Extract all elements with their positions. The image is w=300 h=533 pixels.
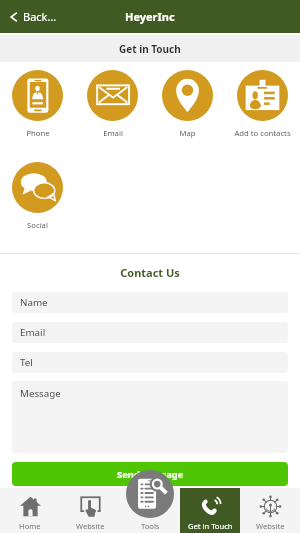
- button[interactable]: Website: [240, 488, 300, 533]
- button[interactable]: Tools: [126, 470, 174, 518]
- staticText: Message: [20, 387, 61, 400]
- staticText: Tools: [141, 521, 160, 531]
- staticText: Email: [20, 326, 46, 339]
- staticText: Contact Us: [0, 265, 300, 280]
- staticText: Name: [20, 296, 48, 309]
- button[interactable]: Send Message: [12, 462, 288, 486]
- staticText: Email: [103, 128, 123, 138]
- button[interactable]: Social: [0, 162, 75, 230]
- staticText: Phone: [26, 128, 50, 138]
- button[interactable]: Map: [150, 70, 225, 138]
- button[interactable]: Tel: [12, 352, 288, 373]
- button[interactable]: Email: [75, 70, 150, 138]
- staticText: Send Message: [117, 468, 184, 481]
- staticText: Website: [76, 521, 105, 531]
- button[interactable]: Home: [0, 488, 60, 533]
- button[interactable]: Website: [60, 488, 120, 533]
- button[interactable]: Back...: [4, 5, 61, 28]
- staticText: Website: [256, 521, 285, 531]
- button[interactable]: Tools: [120, 488, 180, 533]
- staticText: Home: [19, 521, 41, 531]
- staticText: Get in Touch: [188, 521, 233, 531]
- staticText: Tel: [20, 356, 33, 369]
- staticText: Social: [27, 220, 48, 230]
- button[interactable]: Add to contacts: [225, 70, 300, 138]
- staticText: Back...: [23, 9, 57, 24]
- button[interactable]: Email: [12, 322, 288, 343]
- button[interactable]: Get in Touch: [180, 488, 240, 533]
- staticText: HeyerInc: [125, 9, 175, 24]
- button[interactable]: Name: [12, 292, 288, 313]
- button[interactable]: Message: [12, 381, 288, 453]
- staticText: Map: [179, 128, 196, 138]
- staticText: Add to contacts: [234, 128, 291, 138]
- button[interactable]: Phone: [0, 70, 75, 138]
- staticText: Get in Touch: [119, 42, 181, 56]
